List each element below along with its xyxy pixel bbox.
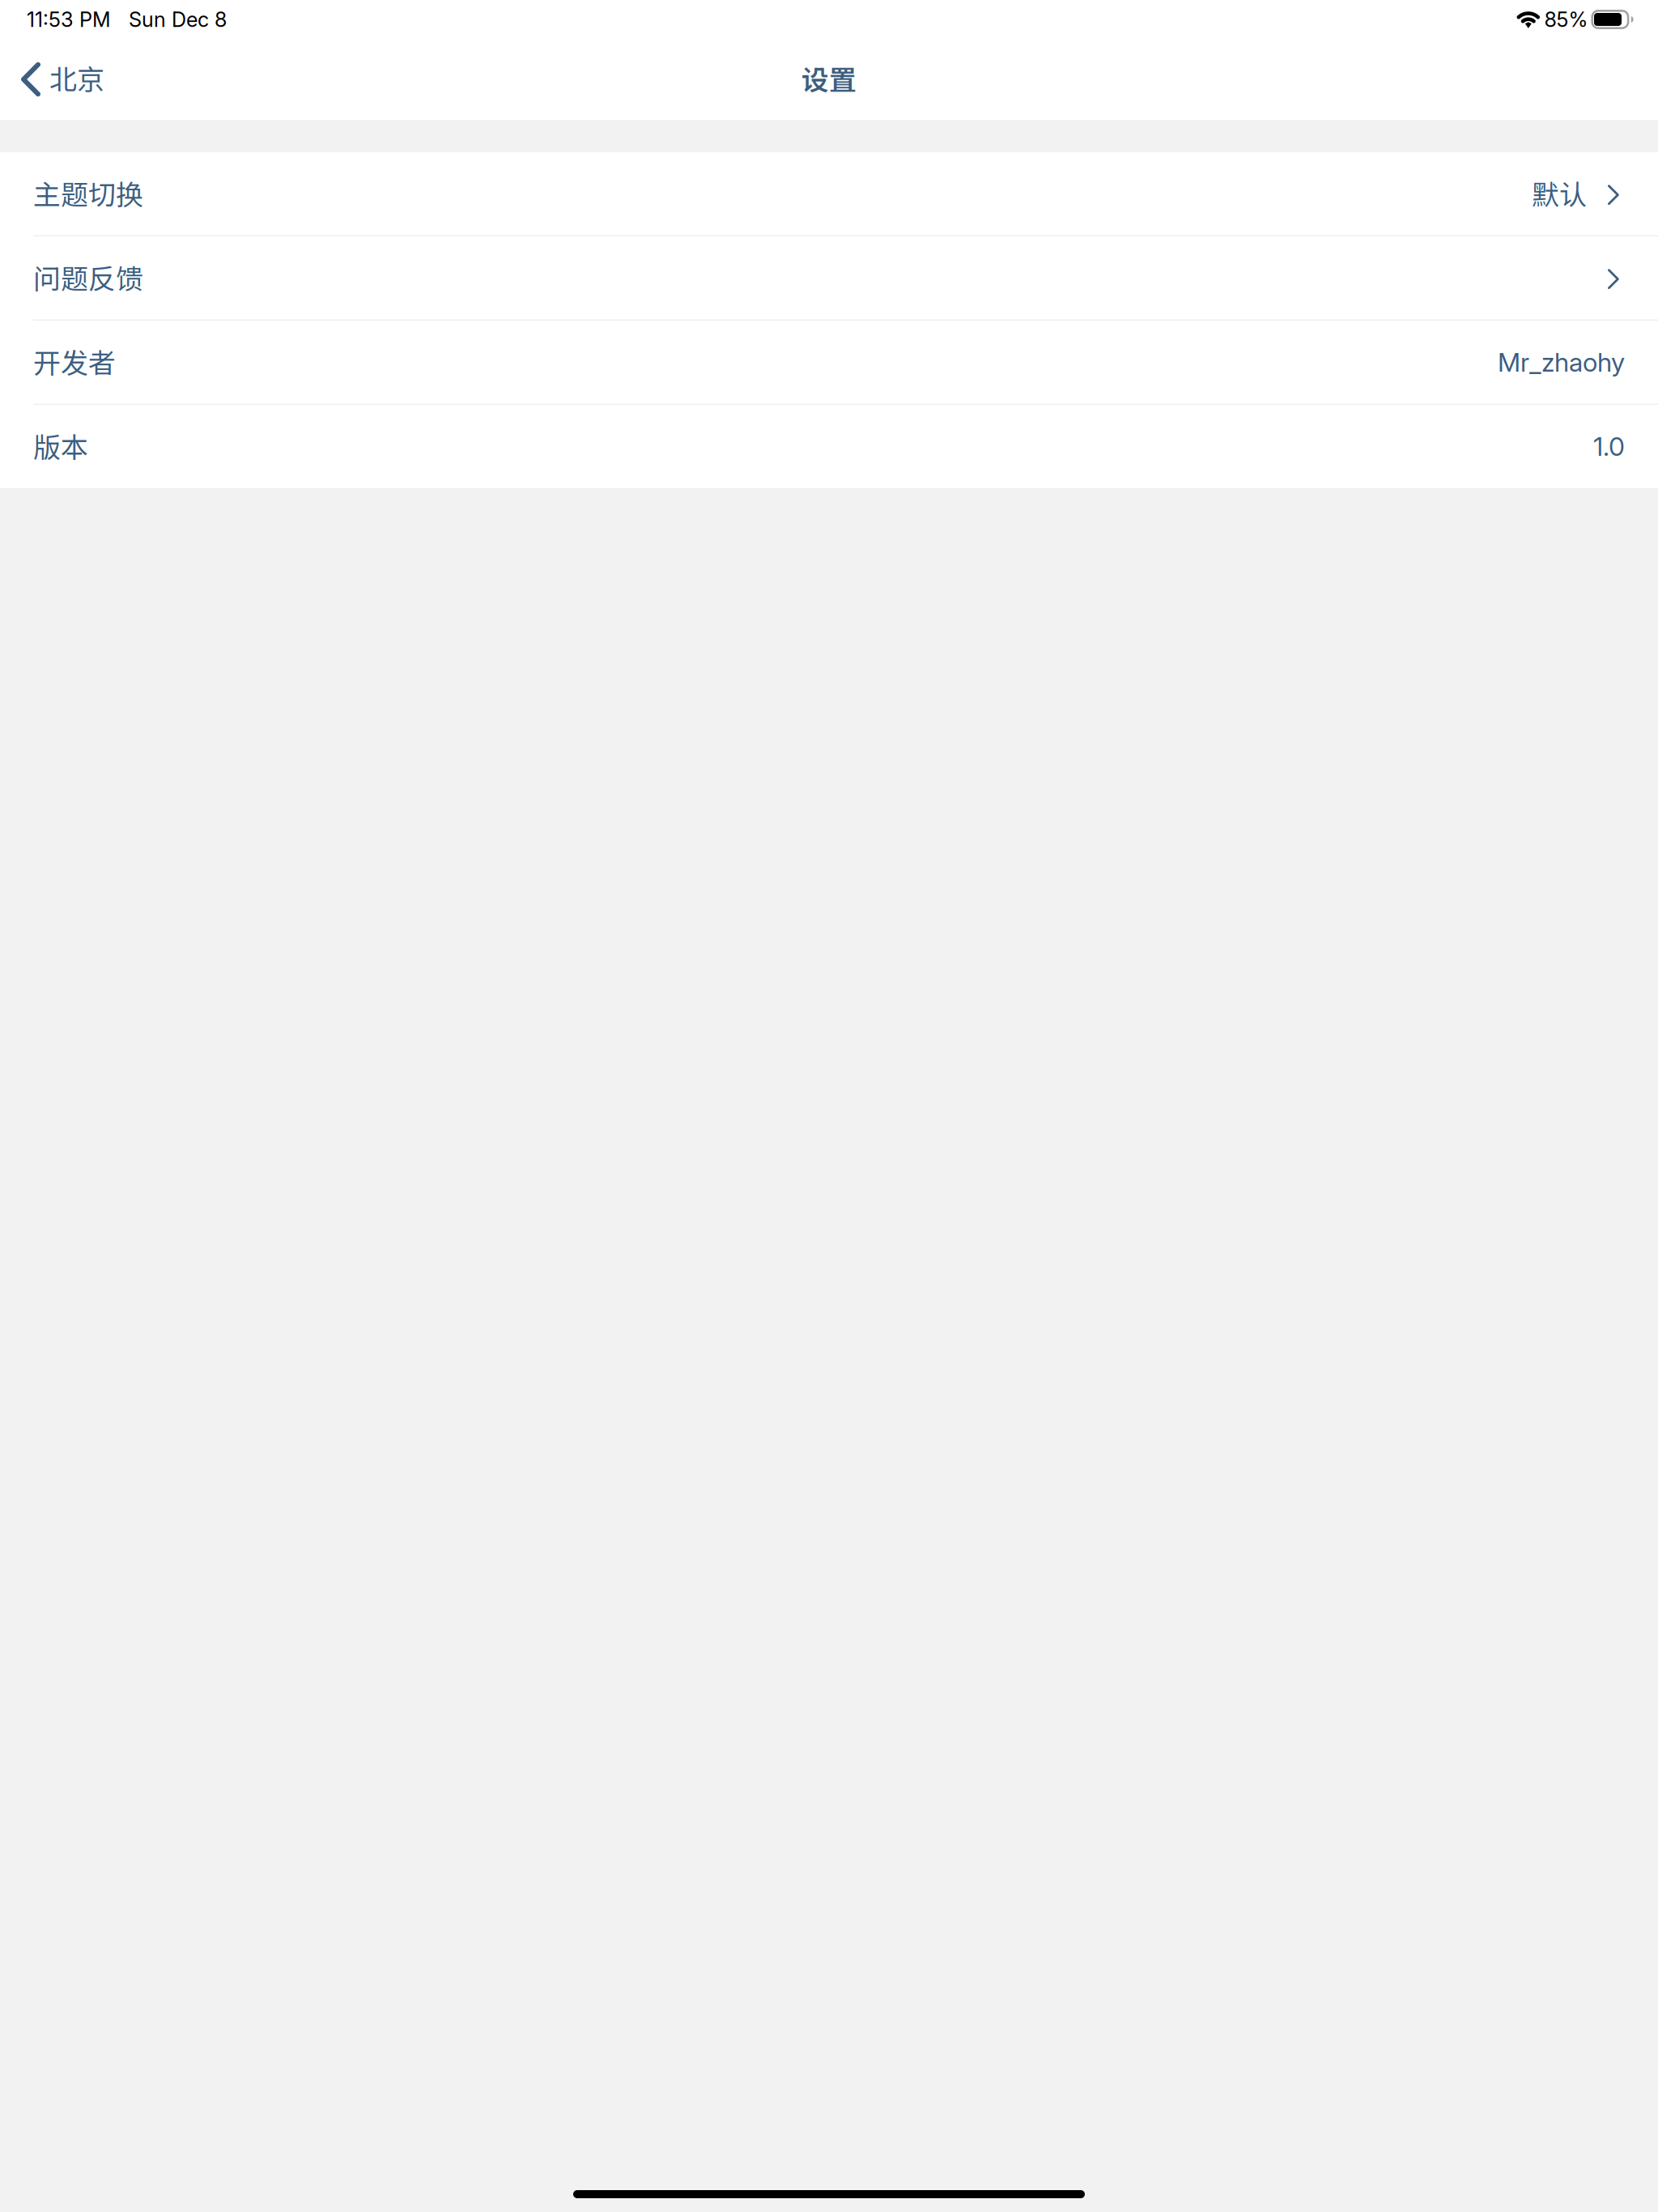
button[interactable]: 版本 [0,405,1658,488]
button[interactable]: 主题切换 [0,152,1658,235]
staticText: Sun Dec 8 [129,7,227,32]
staticText: 1.0 [1593,431,1625,462]
staticText: 主题切换 [33,173,143,213]
staticText: Mr_zhaohy [1498,346,1625,378]
button[interactable]: 问题反馈 [0,236,1658,319]
staticText: 问题反馈 [33,257,143,297]
staticText: 开发者 [33,341,116,381]
staticText: 85% [1544,7,1588,32]
staticText: 设置 [801,58,857,98]
button[interactable]: 返回 北京 [0,39,122,120]
button[interactable]: 开发者 [0,321,1658,404]
staticText: 北京 [49,58,104,98]
staticText: 默认 [1532,173,1587,213]
staticText: 11:53 PM [27,7,111,32]
staticText: 版本 [33,426,88,465]
